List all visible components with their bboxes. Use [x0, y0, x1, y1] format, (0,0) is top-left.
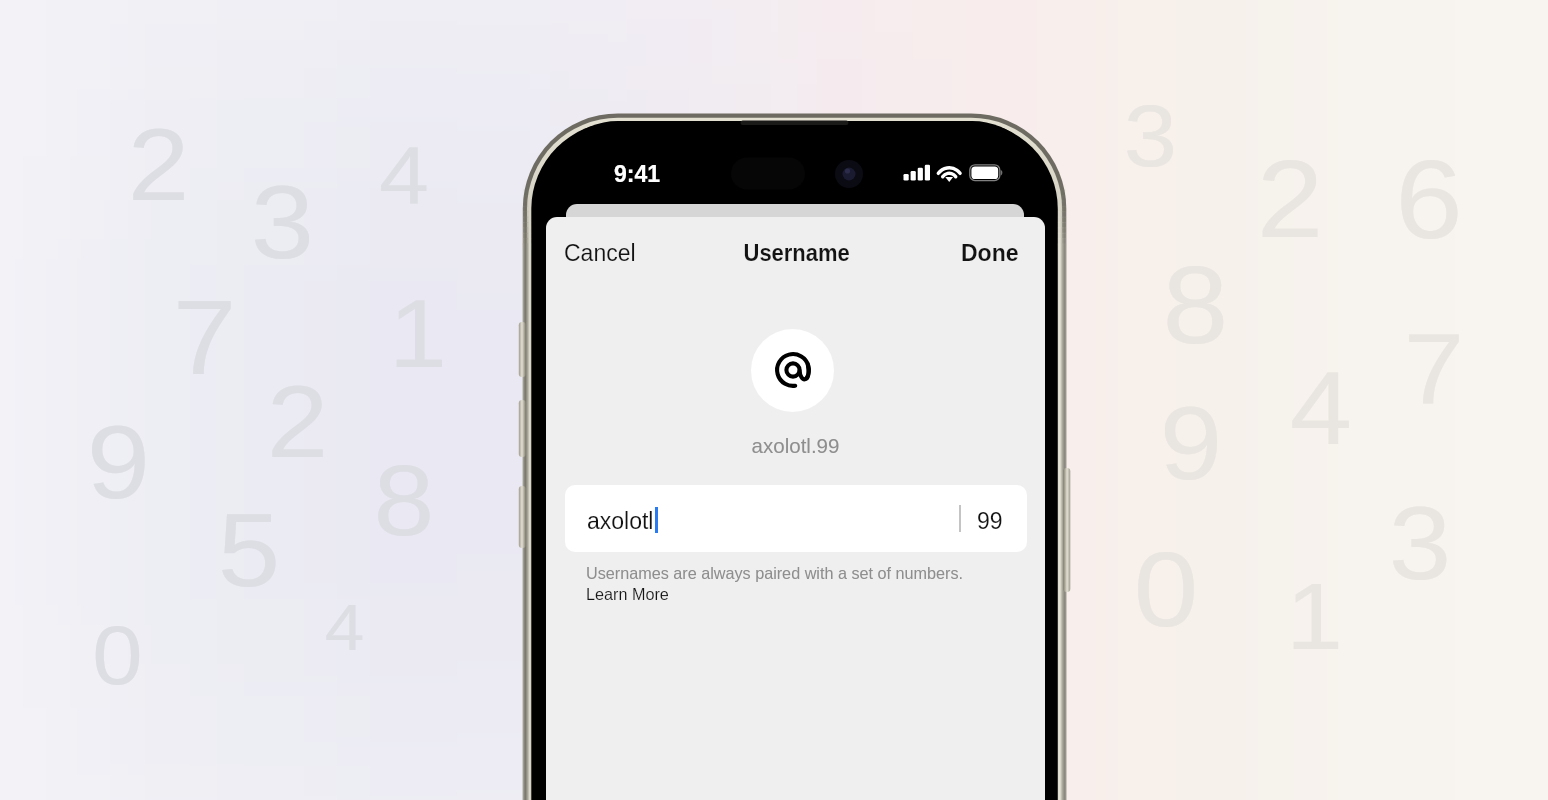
staticText: 99 [977, 508, 1003, 534]
staticText: 1 [389, 280, 447, 387]
other: Profile avatar [751, 329, 834, 412]
staticText: 5 [217, 493, 281, 608]
staticText: 9:41 [614, 161, 661, 187]
button[interactable]: Cancel [564, 240, 636, 266]
button[interactable]: Done [961, 240, 1019, 266]
staticText: 9 [86, 403, 151, 520]
staticText: Learn More [586, 585, 669, 603]
staticText: 4 [324, 591, 365, 664]
staticText: 8 [1162, 245, 1229, 366]
staticText: 2 [127, 108, 189, 222]
staticText: Done [961, 240, 1019, 266]
staticText: 4 [379, 129, 429, 221]
staticText: 0 [92, 609, 143, 702]
staticText: 3 [250, 163, 315, 280]
staticText: 4 [1289, 351, 1353, 466]
button[interactable]: Learn More [586, 585, 669, 603]
staticText: 1 [1286, 564, 1343, 669]
staticText: axolotl.99 [546, 434, 1045, 457]
staticText: 3 [1388, 486, 1452, 601]
staticText: 6 [1395, 137, 1463, 261]
staticText: 7 [172, 279, 237, 396]
staticText: Username [743, 240, 850, 266]
staticText: 3 [1124, 86, 1177, 184]
staticText: 2 [1256, 138, 1324, 261]
staticText: Usernames are always paired with a set o… [586, 564, 963, 582]
staticText: 7 [1403, 314, 1464, 425]
staticText: Cancel [564, 240, 636, 266]
staticText: 9 [1159, 386, 1223, 501]
staticText: 2 [266, 365, 328, 479]
staticText: 0 [1133, 530, 1199, 649]
staticText: axolotl [587, 508, 654, 534]
button[interactable]: axolotl [565, 485, 1027, 552]
staticText: 8 [373, 444, 434, 556]
